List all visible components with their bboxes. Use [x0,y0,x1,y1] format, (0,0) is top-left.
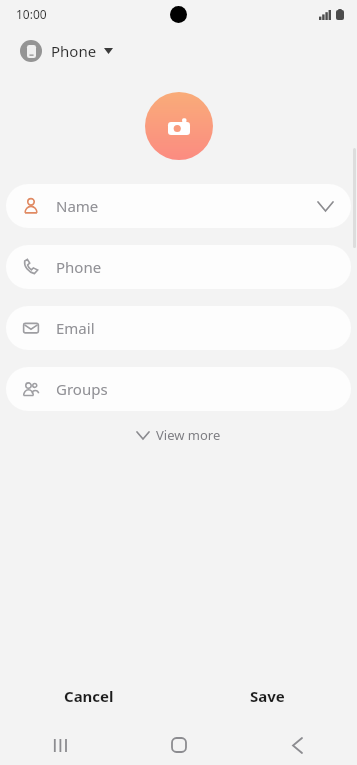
staticText: View more [156,426,221,444]
staticText: Phone [56,257,351,277]
button[interactable]: Cancel [0,676,178,716]
button[interactable]: Groups [6,367,351,411]
staticText: Email [56,318,351,338]
staticText: Name [56,196,318,216]
staticText: 10:00 [16,6,47,22]
button[interactable]: Phone [16,36,117,66]
button[interactable]: Name [6,184,351,228]
button[interactable]: Back [238,725,357,765]
button[interactable]: Save [178,676,357,716]
button[interactable]: Home [119,725,238,765]
button[interactable]: Add photo [145,92,213,160]
staticText: Cancel [64,686,114,706]
staticText: Phone [51,41,97,61]
button[interactable]: Recents [0,725,119,765]
staticText: Save [250,686,285,706]
button[interactable]: Phone [6,245,351,289]
button[interactable]: View more [127,421,231,449]
button[interactable]: Email [6,306,351,350]
staticText: Groups [56,379,351,399]
